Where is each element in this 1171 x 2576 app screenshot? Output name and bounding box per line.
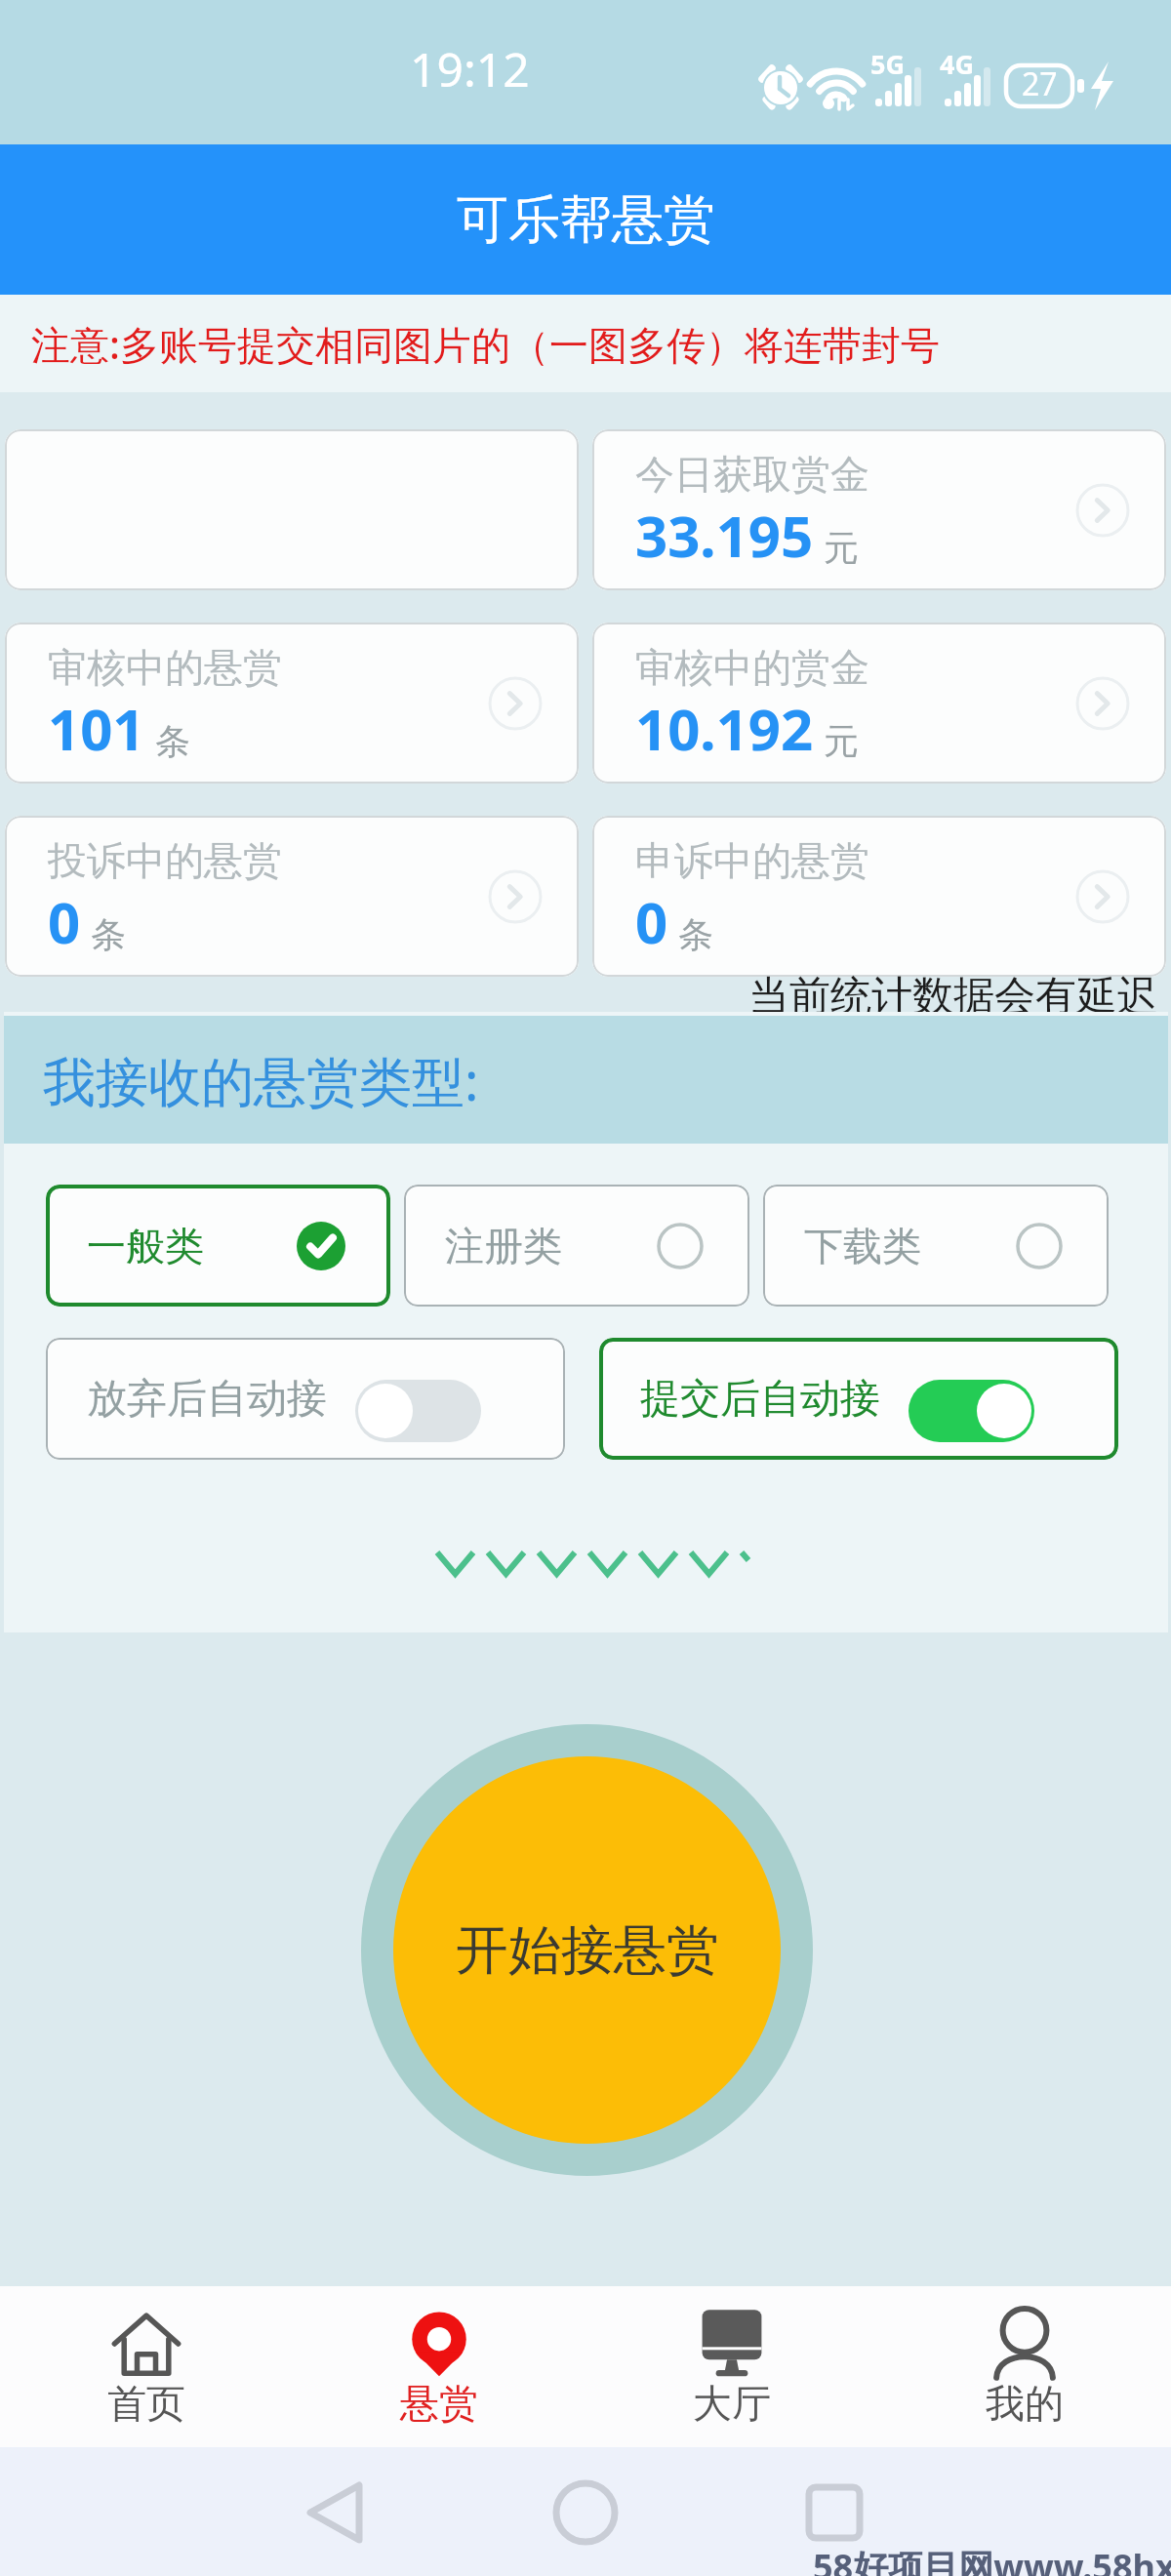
staticText: 我接收的悬赏类型: <box>43 1044 479 1116</box>
staticText: 悬赏 <box>400 2379 478 2428</box>
staticText: 条 <box>91 912 126 956</box>
staticText: 一般类 <box>87 1222 204 1270</box>
staticText: 条 <box>678 912 713 956</box>
staticText: 19:12 <box>410 37 530 101</box>
button[interactable]: 审核中的赏金 <box>592 623 1166 784</box>
button[interactable]: 下载类 <box>763 1185 1109 1307</box>
staticText: 27 <box>1022 62 1058 105</box>
button[interactable]: 今日获取赏金 <box>592 429 1166 590</box>
button[interactable]: 投诉中的悬赏 <box>5 816 579 977</box>
staticText: 大厅 <box>693 2379 771 2428</box>
button[interactable]: 放弃后自动接 <box>46 1338 565 1460</box>
staticText: 33.195 <box>635 497 814 574</box>
staticText: 开始接悬赏 <box>456 1917 719 1984</box>
button[interactable]: 审核中的悬赏 <box>5 623 579 784</box>
button[interactable]: 一般类 <box>46 1185 390 1307</box>
staticText: 今日获取赏金 <box>635 450 869 499</box>
staticText: 101 <box>48 690 145 767</box>
staticText: 当前统计数据会有延迟 <box>748 971 1158 1023</box>
staticText: 0 <box>635 883 668 960</box>
staticText: 10.192 <box>635 690 814 767</box>
button[interactable]: 申诉中的悬赏 <box>592 816 1166 977</box>
button[interactable]: 开始接悬赏 <box>361 1724 813 2176</box>
button[interactable]: 大厅 <box>585 2286 878 2447</box>
staticText: 元 <box>824 719 859 763</box>
staticText: 审核中的赏金 <box>635 643 869 692</box>
staticText: 0 <box>48 883 81 960</box>
staticText: 首页 <box>107 2379 185 2428</box>
staticText: 下载类 <box>804 1222 921 1270</box>
staticText: 提交后自动接 <box>640 1374 880 1425</box>
staticText: 申诉中的悬赏 <box>635 836 869 885</box>
button[interactable]: Recent apps <box>756 2454 912 2571</box>
staticText: 58好项目网www.58hxm.com <box>813 2543 1171 2576</box>
staticText: 注意:多账号提交相同图片的（一图多传）将连带封号 <box>31 317 940 371</box>
staticText: 投诉中的悬赏 <box>48 836 282 885</box>
button[interactable]: 悬赏 <box>293 2286 585 2447</box>
button[interactable]: Home <box>507 2454 664 2571</box>
staticText: 条 <box>155 719 190 763</box>
button[interactable]: 首页 <box>0 2286 293 2447</box>
button[interactable]: 我的 <box>878 2286 1171 2447</box>
staticText: 注册类 <box>445 1222 562 1270</box>
staticText: 审核中的悬赏 <box>48 643 282 692</box>
button[interactable]: 提交后自动接 <box>599 1338 1118 1460</box>
staticText: 元 <box>824 526 859 570</box>
button[interactable]: 注册类 <box>404 1185 749 1307</box>
staticText: 放弃后自动接 <box>87 1374 327 1425</box>
button[interactable]: Back <box>258 2454 414 2571</box>
staticText: 我的 <box>986 2379 1064 2428</box>
button[interactable] <box>5 429 579 590</box>
staticText: 5G <box>870 46 905 82</box>
staticText: 4G <box>940 46 974 82</box>
staticText: 可乐帮悬赏 <box>457 187 715 253</box>
